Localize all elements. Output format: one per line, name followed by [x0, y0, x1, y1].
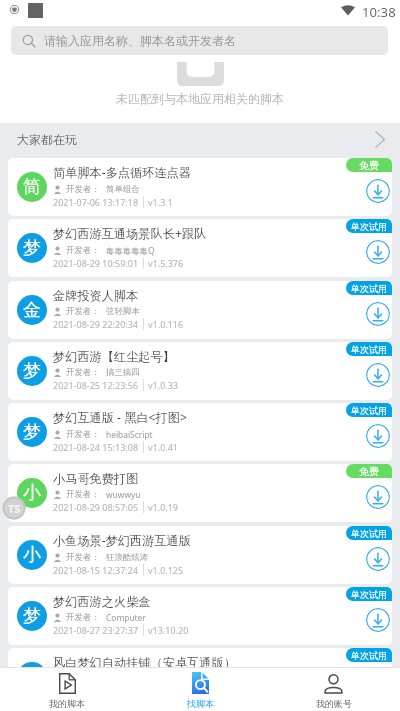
button[interactable]: 金	[8, 281, 392, 339]
button[interactable]: 梦	[8, 403, 392, 461]
staticText: 免费	[359, 465, 379, 478]
staticText: 大家都在玩	[17, 132, 77, 147]
staticText: v1.0.125	[148, 564, 184, 576]
button[interactable]: Download	[366, 179, 390, 203]
staticText: 2021-08-15 12:37:24	[53, 564, 139, 576]
staticText: 免费	[359, 159, 379, 172]
button[interactable]: Download	[366, 363, 390, 387]
staticText: 梦	[23, 605, 41, 628]
staticText: 2021-08-24 15:13:08	[53, 441, 139, 453]
staticText: v1.0.116	[148, 318, 184, 330]
staticText: 简	[23, 176, 41, 199]
button[interactable]: 梦	[8, 587, 392, 645]
staticText: 梦	[23, 421, 41, 444]
button[interactable]: 梦	[8, 219, 392, 277]
staticText: 毒毒毒毒毒Q	[106, 245, 155, 256]
button[interactable]: Assistive touch	[2, 496, 26, 520]
staticText: 单次试用	[351, 344, 387, 355]
staticText: 请输入应用名称、脚本名或开发者名	[44, 33, 236, 48]
button[interactable]: 小	[8, 526, 392, 584]
staticText: 2021-07-06 13:17:18	[53, 196, 139, 208]
staticText: 小马哥免费打图	[53, 471, 139, 486]
button[interactable]: Download	[366, 240, 390, 264]
staticText: 10:38	[362, 3, 396, 21]
staticText: 开发者：	[66, 184, 100, 195]
staticText: 梦幻西游【红尘起号】	[53, 349, 175, 364]
staticText: v1.5.376	[148, 257, 184, 269]
button[interactable]: Download	[366, 485, 390, 509]
button[interactable]: 大家都在玩	[0, 123, 400, 158]
staticText: Computer	[106, 612, 146, 623]
staticText: 开发者：	[66, 245, 100, 256]
staticText: 2021-08-25 12:23:56	[53, 379, 139, 391]
staticText: 金	[23, 299, 41, 322]
staticText: v1.0.19	[148, 501, 178, 513]
staticText: 单次试用	[351, 405, 387, 416]
staticText: 开发者：	[66, 612, 100, 623]
staticText: v1.3.1	[148, 196, 173, 208]
button[interactable]: Download	[366, 608, 390, 632]
staticText: 开发者：	[66, 552, 100, 563]
staticText: TS	[8, 501, 21, 516]
staticText: 单次试用	[351, 528, 387, 539]
staticText: 单次试用	[351, 221, 387, 232]
staticText: v13.10.20	[148, 624, 189, 636]
staticText: 2021-08-29 08:57:05	[53, 501, 139, 513]
staticText: 单次试用	[351, 283, 387, 294]
button[interactable]: Download	[366, 302, 390, 326]
button[interactable]: 找脚本	[134, 668, 267, 711]
staticText: 开发者：	[66, 367, 100, 378]
button[interactable]: Download	[366, 547, 390, 571]
button[interactable]: 简	[8, 158, 392, 216]
button[interactable]: 我的账号	[267, 668, 400, 711]
staticText: 梦幻西游互通场景队长+跟队	[53, 225, 207, 242]
button[interactable]: 风	[8, 648, 392, 667]
button[interactable]: 请输入应用名称、脚本名或开发者名	[11, 26, 388, 55]
staticText: 梦幻互通版 - 黑白<打图>	[53, 409, 187, 426]
staticText: 开发者：	[66, 489, 100, 500]
staticText: 梦幻西游之火柴盒	[53, 594, 151, 609]
staticText: 小	[23, 544, 41, 567]
staticText: 我的脚本	[49, 698, 85, 709]
staticText: 2021-08-29 22:20:34	[53, 318, 139, 330]
staticText: 梦	[23, 360, 41, 383]
staticText: 开发者：	[66, 306, 100, 317]
button[interactable]: 小	[8, 464, 392, 522]
staticText: v1.0.41	[148, 441, 178, 453]
staticText: 小	[23, 482, 41, 505]
staticText: wuwwyu	[106, 489, 141, 500]
staticText: 风白梦幻自动挂铺（安卓互通版）	[53, 655, 236, 667]
staticText: 2021-08-29 10:59:01	[53, 257, 139, 269]
staticText: heibaiScript	[106, 429, 153, 440]
staticText: 我的账号	[316, 698, 352, 709]
staticText: 金牌投资人脚本	[53, 288, 139, 303]
staticText: 未匹配到与本地应用相关的脚本	[116, 91, 284, 106]
staticText: 狂浪酷炫涛	[106, 552, 148, 563]
staticText: 2021-08-27 23:27:37	[53, 624, 139, 636]
staticText: v1.0.33	[148, 379, 178, 391]
staticText: 开发者：	[66, 429, 100, 440]
staticText: 梦	[23, 237, 41, 260]
staticText: 简单组合	[106, 184, 140, 195]
staticText: 搞三搞四	[106, 367, 140, 378]
staticText: 单次试用	[351, 650, 387, 661]
button[interactable]: 我的脚本	[0, 668, 134, 711]
button[interactable]: Download	[366, 424, 390, 448]
staticText: 简单脚本-多点循环连点器	[53, 164, 191, 181]
button[interactable]: 梦	[8, 342, 392, 400]
staticText: 找脚本	[187, 698, 214, 709]
staticText: 弦轻脚本	[106, 306, 140, 317]
staticText: 单次试用	[351, 589, 387, 600]
staticText: 小鱼场景-梦幻西游互通版	[53, 532, 191, 549]
